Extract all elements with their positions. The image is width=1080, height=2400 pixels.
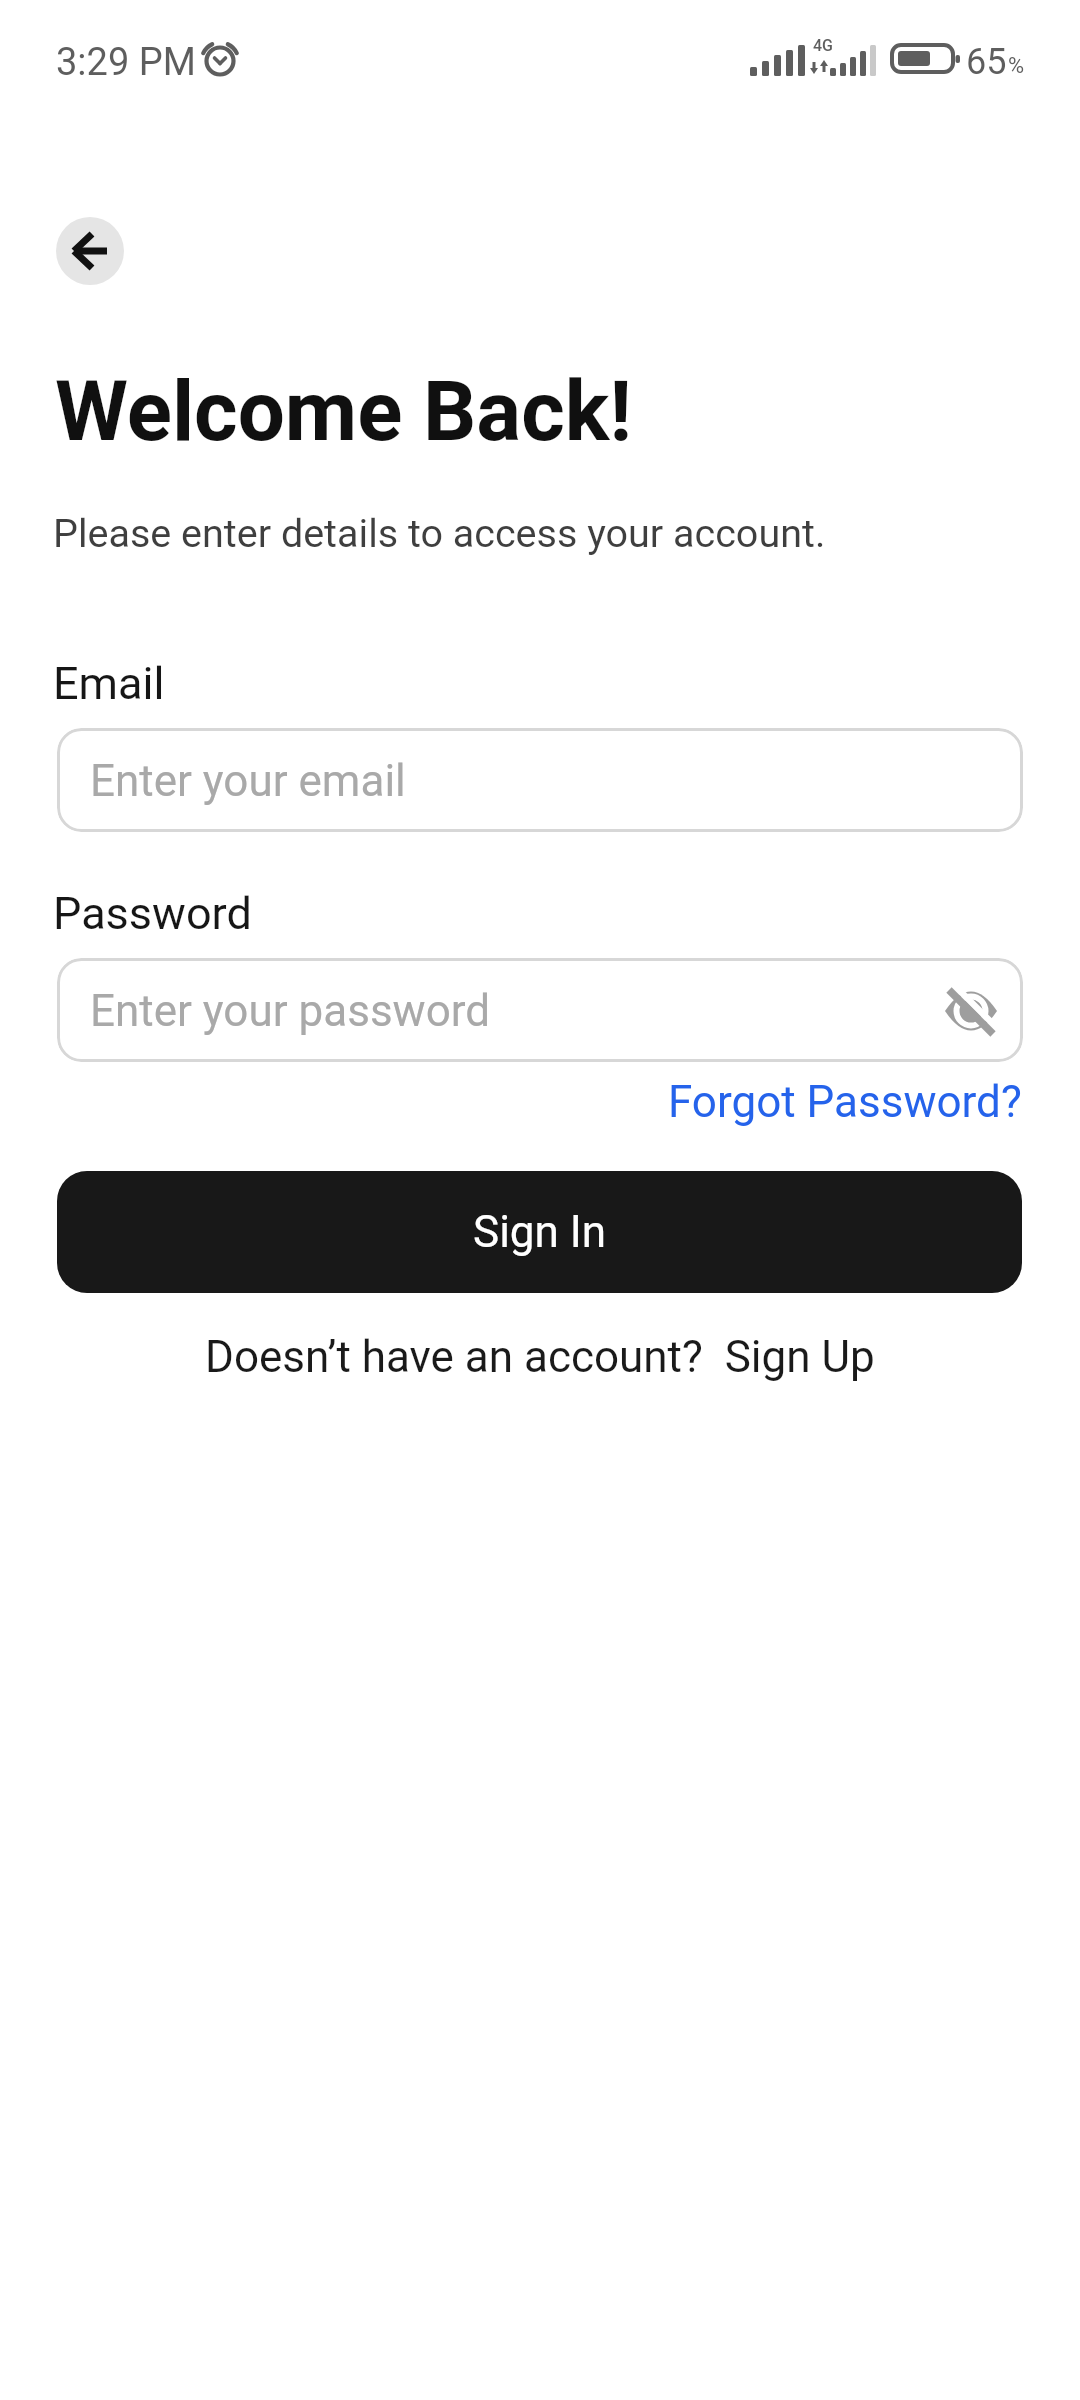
staticText: 4G: [813, 36, 833, 55]
button[interactable]: Enter your password: [57, 958, 1023, 1062]
staticText: Please enter details to access your acco…: [53, 510, 826, 556]
staticText: Forgot Password?: [668, 1076, 1022, 1128]
button[interactable]: Forgot Password?: [668, 1076, 1022, 1128]
staticText: Email: [53, 657, 165, 710]
staticText: Enter your password: [90, 985, 491, 1037]
staticText: Enter your email: [90, 755, 406, 807]
staticText: 3:29 PM: [56, 40, 196, 85]
staticText: Password: [53, 887, 252, 940]
button[interactable]: Sign In: [57, 1171, 1022, 1293]
button[interactable]: Enter your email: [57, 728, 1023, 832]
staticText: 65: [966, 41, 1007, 83]
staticText: Doesn’t have an account? Sign Up: [205, 1331, 875, 1383]
staticText: Welcome Back!: [55, 363, 633, 461]
staticText: %: [1008, 53, 1025, 79]
button[interactable]: Doesn’t have an account? Sign Up: [205, 1331, 875, 1383]
button[interactable]: [56, 217, 124, 285]
staticText: Sign In: [473, 1206, 607, 1258]
